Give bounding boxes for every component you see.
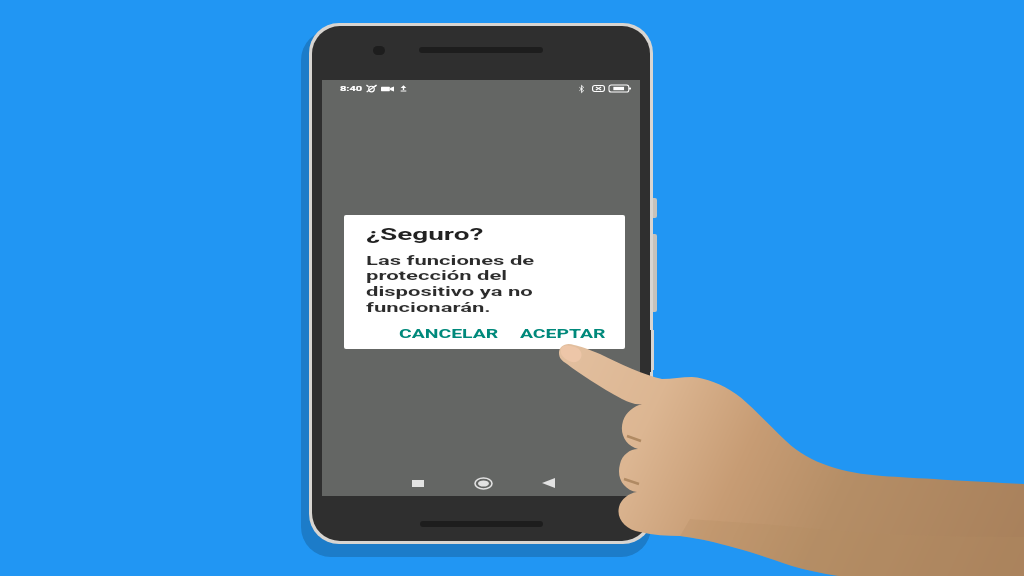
staticText: CANCELAR [399,326,498,341]
button[interactable]: CANCELAR [395,321,499,345]
staticText: ACEPTAR [520,326,606,341]
button[interactable]: Back [527,469,570,497]
button[interactable]: Recent apps [396,469,439,497]
staticText: 8:40 [340,84,364,93]
button[interactable]: ACEPTAR [514,321,606,345]
staticText: ¿Seguro? [366,225,485,244]
staticText: Las funciones de protección del disposit… [366,252,535,316]
button[interactable]: Home [462,469,505,497]
